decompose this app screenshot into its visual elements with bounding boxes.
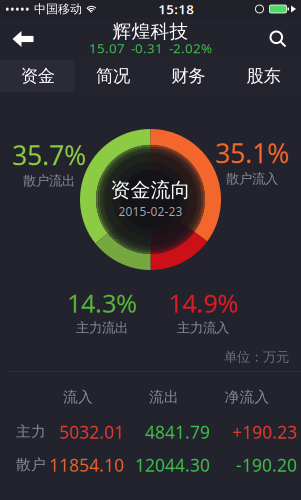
staticText: 资金流向 bbox=[110, 178, 190, 202]
staticText: 财务 bbox=[171, 65, 205, 87]
staticText: 净流入 bbox=[224, 388, 269, 406]
staticText: 14.3% bbox=[67, 286, 137, 320]
staticText: 中国移动 bbox=[30, 2, 86, 16]
staticText: 散户流出 bbox=[23, 172, 75, 189]
staticText: 主力 bbox=[16, 422, 46, 440]
staticText: 14.9% bbox=[168, 286, 238, 320]
staticText: +190.23 bbox=[232, 420, 297, 443]
staticText: -190.20 bbox=[236, 453, 297, 476]
staticText: 辉煌科技 bbox=[112, 20, 188, 43]
staticText: 主力流出 bbox=[76, 320, 128, 336]
button[interactable]: 简况 bbox=[75, 60, 150, 92]
staticText: 简况 bbox=[96, 65, 130, 87]
staticText: 流入 bbox=[63, 388, 93, 406]
staticText: 流出 bbox=[149, 388, 179, 406]
staticText: 散户流入 bbox=[226, 170, 278, 187]
staticText: 2015-02-23 bbox=[118, 203, 182, 219]
button[interactable]: 资金 bbox=[0, 60, 75, 92]
staticText: 散户 bbox=[16, 455, 46, 473]
staticText: 单位：万元 bbox=[224, 349, 289, 365]
staticText: -2.02% bbox=[169, 39, 212, 57]
staticText: 资金 bbox=[21, 65, 55, 87]
staticText: 11854.10 bbox=[49, 453, 124, 476]
staticText: 35.7% bbox=[12, 137, 86, 172]
staticText: 15:18 bbox=[158, 0, 194, 18]
staticText: 4841.79 bbox=[145, 420, 210, 443]
staticText: ••••• bbox=[5, 1, 30, 17]
button[interactable]: Search bbox=[255, 18, 301, 60]
staticText: 股东 bbox=[246, 65, 280, 87]
button[interactable]: 股东 bbox=[226, 60, 301, 92]
staticText: 35.1% bbox=[215, 135, 289, 170]
staticText: 15.07 bbox=[89, 39, 125, 57]
staticText: 12044.30 bbox=[135, 453, 210, 476]
staticText: -0.31 bbox=[131, 39, 163, 57]
staticText: 主力流入 bbox=[177, 320, 229, 336]
staticText: 5032.01 bbox=[59, 420, 124, 443]
button[interactable]: 财务 bbox=[150, 60, 226, 92]
button[interactable]: Back bbox=[0, 18, 46, 60]
